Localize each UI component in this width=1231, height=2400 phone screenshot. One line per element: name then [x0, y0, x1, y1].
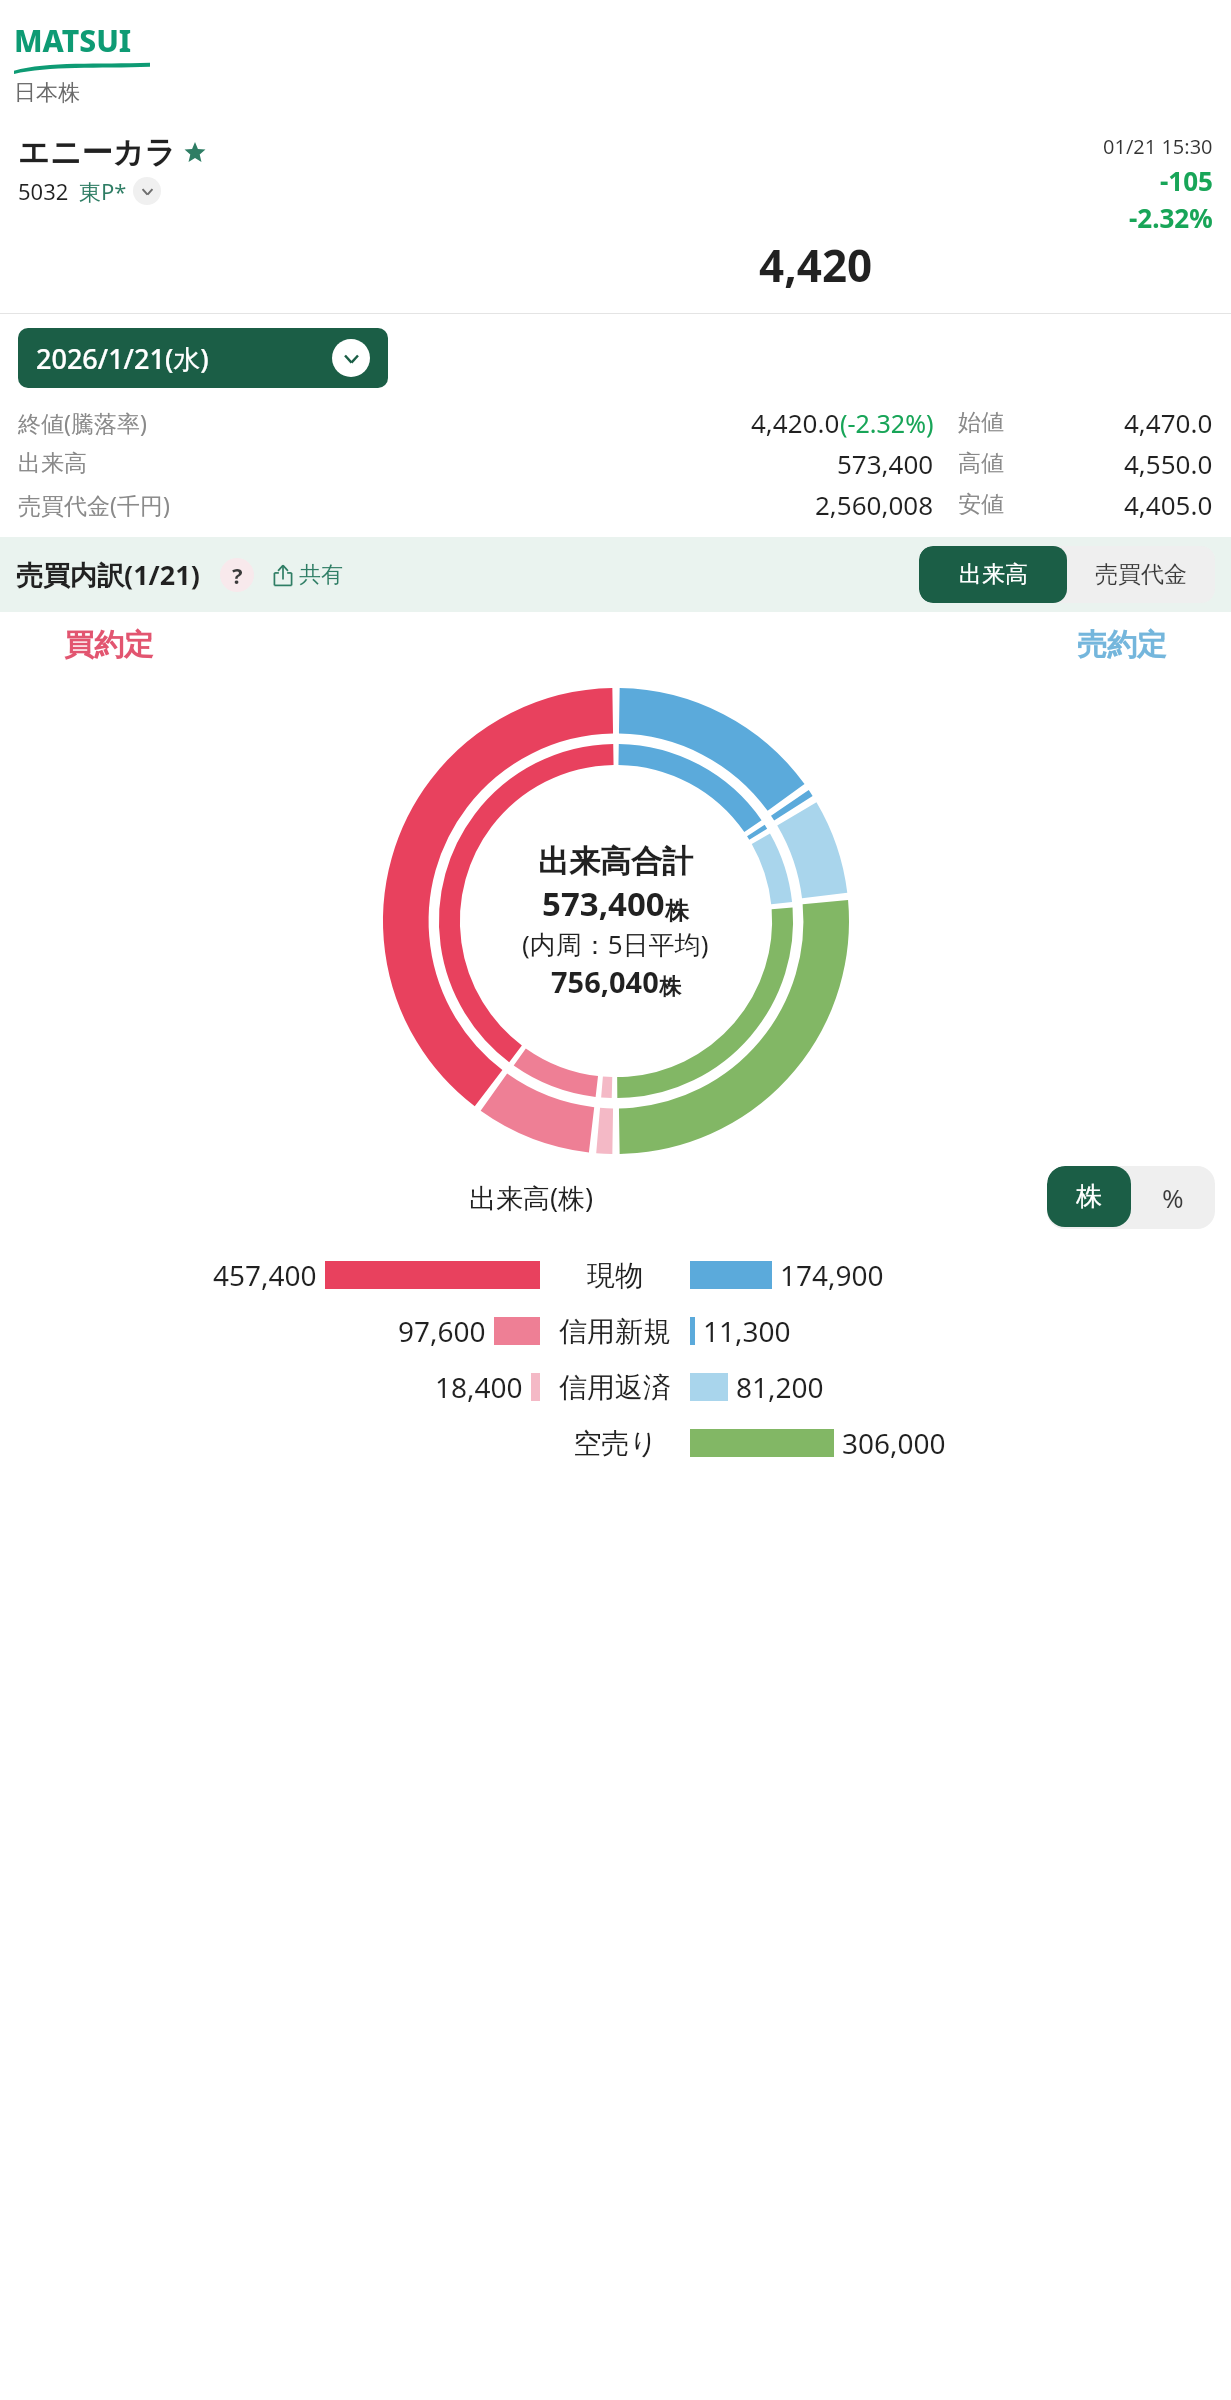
staticText: 11,300 [703, 1312, 791, 1350]
staticText: (内周：5日平均) [522, 926, 709, 962]
staticText: 終値(騰落率) [18, 407, 233, 438]
button[interactable]: 売買代金 [1067, 546, 1215, 603]
button[interactable]: 空売り [10, 1424, 1221, 1462]
staticText: 東P* [79, 176, 127, 206]
button[interactable]: 97,600 [10, 1312, 1221, 1350]
staticText: 現物 [587, 1258, 643, 1293]
staticText: 2,560,008 [815, 487, 934, 522]
staticText: 174,900 [780, 1256, 884, 1294]
button[interactable]: 共有 [270, 561, 343, 589]
staticText: 97,600 [398, 1312, 486, 1350]
button[interactable]: ヘルプ [220, 558, 254, 592]
staticText: 306,000 [842, 1424, 946, 1462]
staticText: MATSUI [14, 20, 132, 61]
staticText: 買約定 [64, 626, 154, 664]
staticText: 株 [665, 896, 689, 926]
staticText: 売買内訳(1/21) [16, 556, 200, 593]
button[interactable]: 株 [1047, 1166, 1131, 1227]
staticText: 4,405.0 [1124, 487, 1213, 522]
staticText: 安値 [958, 490, 1038, 519]
staticText: 共有 [299, 561, 343, 589]
staticText: 81,200 [736, 1368, 824, 1406]
button[interactable]: 5032 [18, 176, 161, 206]
staticText: 573,400 [542, 881, 665, 926]
staticText: 出来高(株) [469, 1179, 594, 1216]
staticText: 出来高 [18, 449, 233, 478]
staticText: 5032 [18, 176, 69, 206]
staticText: 01/21 15:30 [1103, 133, 1213, 160]
staticText: 売買代金 [1095, 560, 1187, 589]
staticText: 売約定 [1077, 626, 1167, 664]
staticText: 信用新規 [559, 1314, 671, 1349]
staticText: 18,400 [435, 1368, 523, 1406]
button[interactable]: 457,400 [10, 1256, 1221, 1294]
staticText: 株 [1076, 1180, 1102, 1213]
staticText: ? [232, 560, 243, 590]
staticText: % [1162, 1180, 1184, 1215]
staticText: 756,040 [551, 962, 659, 1001]
staticText: 高値 [958, 449, 1038, 478]
button[interactable]: 2026/1/21(水) [18, 328, 388, 388]
staticText: 4,550.0 [1124, 446, 1213, 481]
staticText: 出来高合計 [538, 842, 693, 881]
staticText: 始値 [958, 408, 1038, 437]
button[interactable]: お気に入り [184, 142, 206, 164]
button[interactable]: 18,400 [10, 1368, 1221, 1406]
staticText: 空売り [573, 1426, 658, 1461]
staticText: エニーカラ [18, 133, 176, 172]
staticText: 457,400 [213, 1256, 317, 1294]
staticText: -2.32% [1129, 200, 1213, 235]
staticText: 売買代金(千円) [18, 489, 233, 520]
button[interactable]: % [1131, 1166, 1215, 1229]
staticText: 4,470.0 [1124, 405, 1213, 440]
staticText: 出来高 [959, 560, 1028, 589]
staticText: 2026/1/21(水) [36, 340, 332, 377]
staticText: 4,420 [759, 235, 873, 295]
staticText: 信用返済 [559, 1370, 671, 1405]
staticText: 573,400 [837, 446, 934, 481]
staticText: 4,420.0 [751, 405, 840, 440]
button[interactable]: 出来高 [919, 546, 1067, 603]
staticText: 日本株 [14, 79, 80, 107]
staticText: (-2.32%) [840, 406, 934, 440]
staticText: 株 [659, 973, 681, 1001]
staticText: -105 [1160, 163, 1213, 198]
